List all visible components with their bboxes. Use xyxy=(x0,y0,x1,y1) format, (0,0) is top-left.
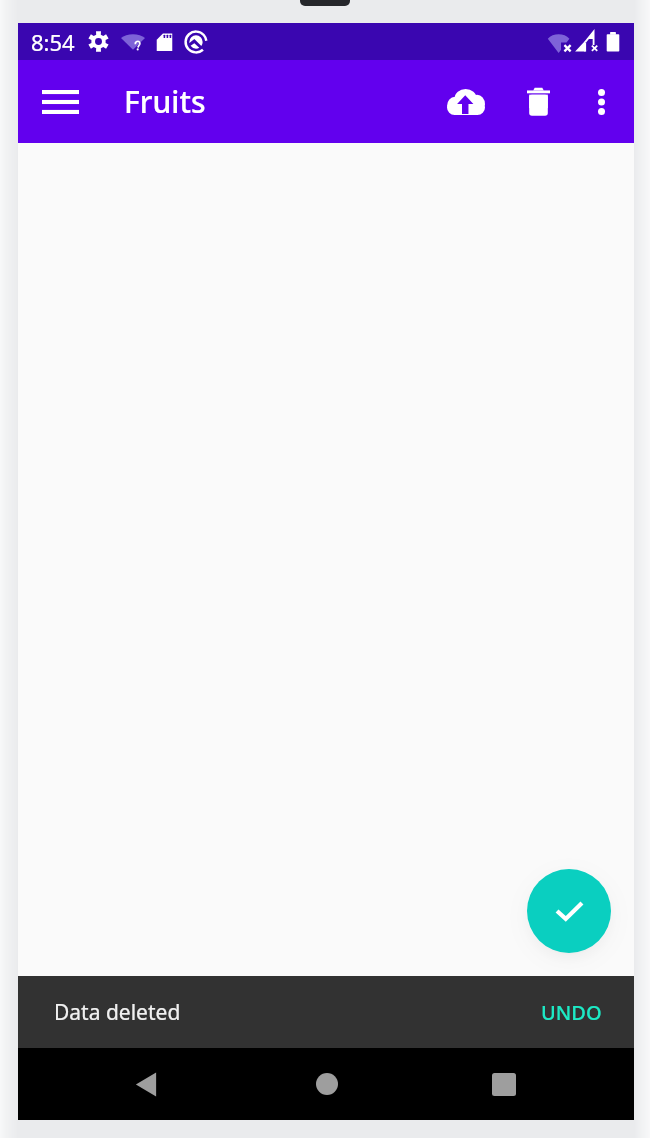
button[interactable]: Upload to cloud xyxy=(438,74,494,130)
staticText: Fruits xyxy=(124,81,206,122)
button[interactable]: More options xyxy=(576,77,626,127)
button[interactable]: Navigation menu xyxy=(30,72,90,132)
button[interactable]: Recent apps xyxy=(429,1048,634,1120)
staticText: 8:54 xyxy=(31,27,75,57)
button[interactable]: Back xyxy=(18,1048,224,1120)
staticText: Data deleted xyxy=(54,998,181,1027)
button[interactable]: Confirm xyxy=(527,869,611,953)
staticText: UNDO xyxy=(541,999,602,1026)
button[interactable]: Home xyxy=(224,1048,429,1120)
button[interactable]: UNDO xyxy=(529,987,614,1038)
button[interactable]: Delete xyxy=(508,74,564,130)
